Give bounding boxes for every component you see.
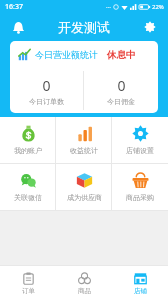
staticText: 订单 bbox=[22, 287, 35, 295]
staticText: 我的账户 bbox=[14, 146, 42, 155]
button[interactable]: 0 bbox=[10, 68, 83, 113]
staticText: 商品 bbox=[78, 287, 91, 295]
staticText: 22% bbox=[152, 3, 164, 11]
button[interactable]: 关联微信 bbox=[0, 164, 56, 210]
staticText: 休息中 bbox=[107, 49, 136, 61]
staticText: 店铺 bbox=[134, 287, 147, 295]
button[interactable]: 收益统计 bbox=[56, 117, 112, 163]
staticText: 0 bbox=[117, 76, 126, 95]
button[interactable]: Settings bbox=[140, 17, 160, 37]
button[interactable]: 商品 bbox=[56, 266, 112, 300]
button[interactable]: 商品采购 bbox=[112, 164, 168, 210]
staticText: 今日佣金 bbox=[107, 97, 135, 106]
button[interactable]: Notifications bbox=[8, 17, 28, 37]
staticText: ··· bbox=[106, 3, 111, 11]
staticText: 店铺设置 bbox=[126, 146, 154, 155]
staticText: 成为供应商 bbox=[67, 193, 102, 202]
button[interactable]: 订单 bbox=[0, 266, 56, 300]
staticText: 关联微信 bbox=[14, 193, 42, 202]
staticText: 收益统计 bbox=[70, 146, 98, 155]
staticText: 商品采购 bbox=[126, 193, 154, 202]
staticText: 今日营业额统计 bbox=[35, 49, 98, 60]
button[interactable]: 店铺设置 bbox=[112, 117, 168, 163]
button[interactable]: 我的账户 bbox=[0, 117, 56, 163]
button[interactable]: 0 bbox=[84, 68, 158, 113]
staticText: 16:37 bbox=[5, 2, 23, 12]
button[interactable]: 成为供应商 bbox=[56, 164, 112, 210]
staticText: 今日订单数 bbox=[29, 97, 64, 106]
staticText: 0 bbox=[42, 76, 51, 95]
button[interactable]: 今日营业额统计 bbox=[10, 41, 158, 113]
button[interactable]: 店铺 bbox=[112, 266, 168, 300]
staticText: 开发测试 bbox=[58, 19, 110, 35]
